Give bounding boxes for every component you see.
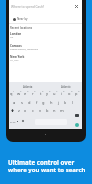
staticText: l xyxy=(72,100,74,105)
button[interactable]: v xyxy=(37,105,44,114)
button[interactable]: o xyxy=(66,88,73,97)
staticText: n xyxy=(53,108,56,113)
staticText: 7 xyxy=(56,89,58,92)
staticText: 1 xyxy=(13,89,15,92)
staticText: y xyxy=(46,91,49,96)
staticText: 8 xyxy=(63,89,65,92)
staticText: w xyxy=(17,91,21,96)
button[interactable]: r xyxy=(29,88,36,97)
staticText: r xyxy=(32,91,34,96)
staticText: g xyxy=(42,100,45,105)
button[interactable]: ?123 xyxy=(9,118,16,124)
staticText: c xyxy=(32,108,34,113)
staticText: Atlantic xyxy=(61,85,71,89)
staticText: b xyxy=(46,108,49,113)
button[interactable]: Search xyxy=(75,123,79,127)
staticText: Near by xyxy=(17,17,28,21)
staticText: ?123 xyxy=(10,120,16,123)
staticText: London xyxy=(10,32,22,36)
button[interactable]: Caracas xyxy=(9,44,82,55)
staticText: u xyxy=(53,91,56,96)
staticText: e xyxy=(24,91,27,96)
staticText: Recent locations xyxy=(10,26,32,30)
button[interactable]: Where to spend Cash? xyxy=(9,0,82,14)
button[interactable]: u xyxy=(51,88,58,97)
button[interactable]: g xyxy=(40,97,47,106)
staticText: f xyxy=(36,100,38,105)
button[interactable]: i xyxy=(58,88,65,97)
staticText: i xyxy=(61,91,63,96)
button[interactable]: j xyxy=(55,97,62,106)
staticText: h xyxy=(50,100,53,105)
button[interactable]: d xyxy=(26,97,33,106)
button[interactable]: z xyxy=(15,105,22,114)
staticText: q xyxy=(10,91,13,96)
staticText: Capital District, Venezuela xyxy=(10,48,38,51)
staticText: Caracas xyxy=(10,44,22,48)
button[interactable]: y xyxy=(44,88,51,97)
button[interactable]: s xyxy=(18,97,25,106)
staticText: p xyxy=(75,91,78,96)
staticText: d xyxy=(28,100,31,105)
staticText: v xyxy=(39,108,42,113)
button[interactable]: Comma xyxy=(15,118,20,124)
button[interactable]: b xyxy=(44,105,51,114)
staticText: Atlanta xyxy=(23,85,33,89)
staticText: 5 xyxy=(42,89,44,92)
button[interactable]: Near by xyxy=(9,15,82,23)
staticText: Ultimate control over xyxy=(8,158,75,166)
staticText: 2 xyxy=(20,89,22,92)
staticText: Where to spend Cash? xyxy=(11,5,45,9)
staticText: m xyxy=(60,108,64,113)
button[interactable]: k xyxy=(62,97,69,106)
button[interactable]: Emoji xyxy=(20,118,25,124)
staticText: UK xyxy=(10,36,14,39)
button[interactable]: q xyxy=(8,88,15,97)
staticText: NY, USA xyxy=(10,59,19,62)
staticText: o xyxy=(68,91,71,96)
button[interactable]: Clear search xyxy=(72,2,81,11)
staticText: a xyxy=(13,100,16,105)
button[interactable]: t xyxy=(37,88,44,97)
staticText: 6 xyxy=(49,89,51,92)
button[interactable]: l xyxy=(69,97,76,106)
staticText: j xyxy=(58,100,60,105)
staticText: t xyxy=(40,91,42,96)
button[interactable]: Shift xyxy=(9,108,15,113)
button[interactable]: m xyxy=(58,105,65,114)
button[interactable]: w xyxy=(15,88,22,97)
button[interactable]: New York xyxy=(9,55,82,66)
button[interactable]: h xyxy=(48,97,55,106)
button[interactable]: p xyxy=(73,88,80,97)
staticText: 3 xyxy=(27,89,29,92)
button[interactable]: a xyxy=(11,97,18,106)
staticText: 4 xyxy=(34,89,36,92)
button[interactable]: f xyxy=(33,97,40,106)
button[interactable]: Backspace xyxy=(75,114,79,117)
staticText: 0 xyxy=(78,89,80,92)
staticText: where you want to search xyxy=(8,166,86,174)
button[interactable]: n xyxy=(51,105,58,114)
staticText: x xyxy=(24,108,27,113)
button[interactable]: c xyxy=(29,105,36,114)
button[interactable]: x xyxy=(22,105,29,114)
staticText: 9 xyxy=(71,89,73,92)
staticText: z xyxy=(18,108,20,113)
staticText: k xyxy=(64,100,67,105)
button[interactable]: e xyxy=(22,88,29,97)
staticText: s xyxy=(21,100,23,105)
staticText: New York xyxy=(10,55,25,59)
button[interactable]: London xyxy=(9,32,82,43)
